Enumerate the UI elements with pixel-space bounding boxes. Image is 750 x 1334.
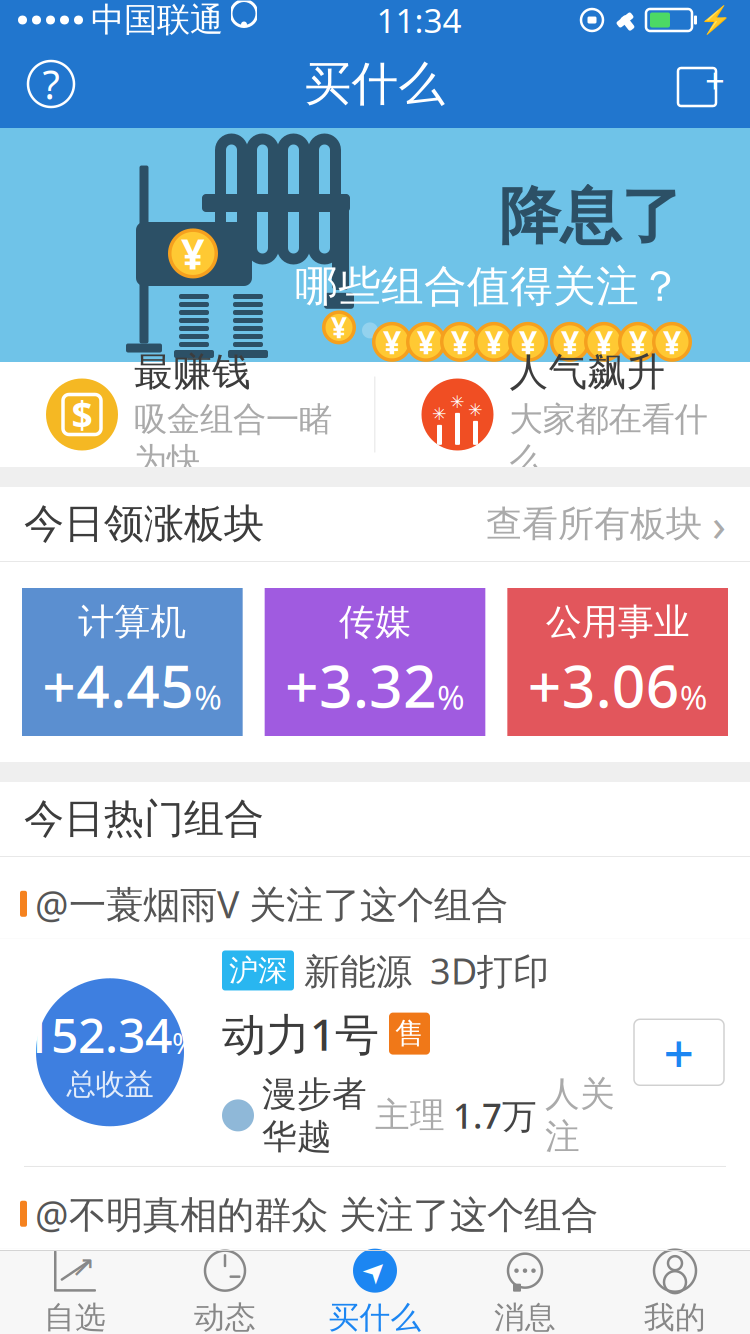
- button[interactable]: ➤: [300, 1250, 450, 1334]
- staticText: 吸金组合一睹为快: [134, 399, 332, 481]
- button[interactable]: 公用事业: [507, 588, 728, 736]
- staticText: 查看所有板块: [486, 502, 702, 546]
- staticText: +: [663, 1017, 694, 1088]
- staticText: +: [663, 1325, 694, 1334]
- staticText: 今日领涨板块: [24, 499, 264, 548]
- staticText: ¥: [181, 226, 205, 281]
- staticText: 计算机: [78, 600, 186, 644]
- staticText: 152.34: [24, 1002, 172, 1066]
- button[interactable]: 传媒: [265, 588, 485, 736]
- staticText: $: [71, 390, 92, 439]
- button[interactable]: 152.34: [0, 939, 750, 1166]
- button[interactable]: 降息了 哪些组合值得关注: [0, 128, 750, 362]
- staticText: 哪些组合值得关注？: [295, 260, 682, 313]
- staticText: 人关注: [545, 1073, 615, 1158]
- button[interactable]: 帮助: [14, 47, 88, 121]
- staticText: ¥: [561, 321, 579, 363]
- staticText: ¥: [331, 309, 347, 346]
- button[interactable]: 我的: [600, 1250, 750, 1334]
- staticText: 86.10: [25, 1311, 146, 1334]
- staticText: 消息: [494, 1299, 556, 1334]
- button[interactable]: 创建组合: [662, 47, 736, 121]
- staticText: +3.06: [528, 646, 680, 724]
- staticText: 传媒: [339, 600, 411, 644]
- staticText: 主理: [375, 1094, 445, 1137]
- staticText: 动态: [194, 1299, 256, 1334]
- staticText: 买什么: [328, 1299, 421, 1334]
- staticText: 人气飙升: [509, 348, 665, 396]
- staticText: 沪深: [205, 1261, 263, 1297]
- staticText: 最赚钱: [134, 348, 251, 396]
- staticText: 漫步者华越: [262, 1073, 367, 1158]
- staticText: ✳: [432, 404, 447, 424]
- staticText: 稳健2号: [198, 1311, 355, 1334]
- staticText: %: [437, 675, 465, 719]
- staticText: 自选: [44, 1299, 106, 1334]
- button[interactable]: ↗: [0, 1250, 150, 1334]
- staticText: +3.32: [285, 646, 437, 724]
- staticText: ¥: [451, 321, 469, 363]
- staticText: %: [172, 1023, 196, 1062]
- button[interactable]: $: [0, 362, 374, 467]
- staticText: 降息了: [499, 179, 682, 254]
- staticText: 动力1号: [222, 1004, 379, 1063]
- staticText: ¥: [629, 321, 647, 363]
- staticText: ¥: [663, 321, 681, 363]
- staticText: ¥: [485, 321, 503, 363]
- staticText: ✳: [450, 392, 465, 412]
- staticText: 11:34: [376, 0, 461, 42]
- staticText: +4.45: [42, 646, 194, 724]
- staticText: 售: [371, 1322, 400, 1334]
- staticText: 公用事业: [546, 600, 690, 644]
- staticText: 港口 房地产开发: [280, 1257, 554, 1301]
- staticText: ¥: [417, 321, 435, 363]
- button[interactable]: 动态: [150, 1250, 300, 1334]
- staticText: +: [705, 57, 725, 103]
- staticText: ✳: [468, 400, 483, 420]
- staticText: 1.7万: [453, 1092, 537, 1138]
- staticText: ?: [42, 57, 59, 110]
- staticText: 买什么: [304, 55, 445, 113]
- staticText: ↗: [71, 1250, 96, 1283]
- staticText: 售: [395, 1016, 424, 1052]
- staticText: 大家都在看什么: [509, 399, 707, 481]
- button[interactable]: 今日领涨板块: [0, 487, 750, 561]
- staticText: ➤: [362, 1254, 387, 1287]
- staticText: %: [680, 675, 708, 719]
- button[interactable]: 计算机: [22, 588, 243, 736]
- staticText: %: [194, 675, 222, 719]
- staticText: ›: [712, 494, 726, 554]
- button[interactable]: ✳: [375, 362, 750, 467]
- staticText: 中国联通: [91, 0, 223, 40]
- staticText: 我的: [644, 1299, 706, 1334]
- staticText: 新能源 3D打印: [304, 947, 549, 994]
- staticText: ¥: [519, 321, 537, 363]
- staticText: @不明真相的群众 关注了这个组合: [35, 1189, 598, 1239]
- staticText: ¥: [595, 321, 613, 363]
- button[interactable]: 86.10: [0, 1249, 750, 1334]
- staticText: 沪深: [229, 952, 287, 988]
- staticText: @一蓑烟雨V 关注了这个组合: [35, 879, 508, 929]
- staticText: 总收益: [66, 1066, 153, 1102]
- button[interactable]: 消息: [450, 1250, 600, 1334]
- staticText: 今日热门组合: [24, 794, 264, 843]
- staticText: ¥: [383, 321, 401, 363]
- staticText: ⚡: [699, 5, 732, 35]
